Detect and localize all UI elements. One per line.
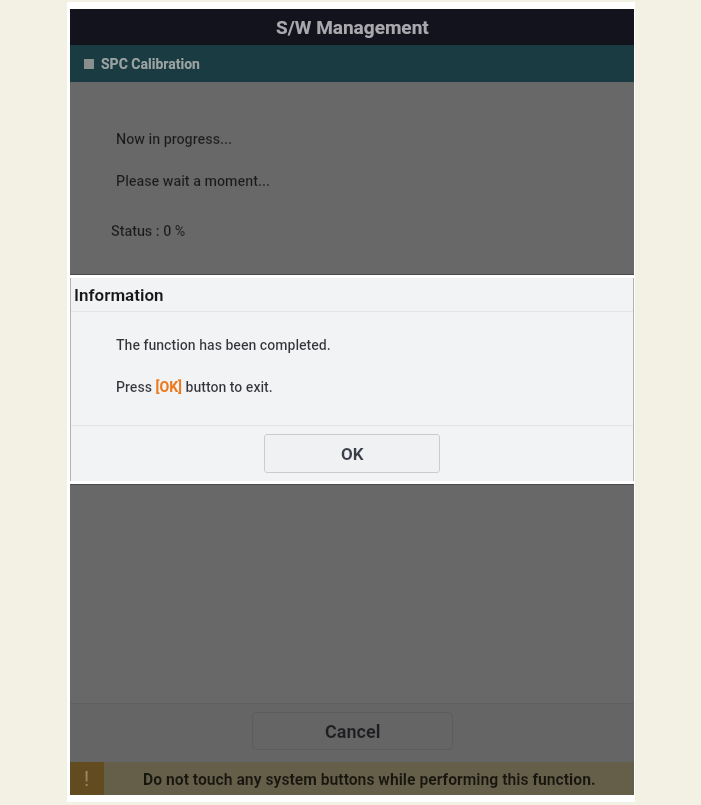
staticText: OK [341,444,364,464]
button[interactable]: OK [264,434,440,473]
staticText: S/W Management [276,16,429,38]
staticText: Status : 0 % [111,223,186,240]
staticText: Information [74,285,164,305]
staticText: Do not touch any system buttons while pe… [143,770,596,788]
other: Warning [70,762,104,795]
staticText: Please wait a moment... [116,173,270,190]
staticText: Cancel [325,721,381,742]
staticText: ! [84,767,90,790]
staticText: SPC Calibration [101,56,200,72]
button[interactable]: Cancel [252,712,453,750]
staticText: Press [OK] button to exit. [116,379,273,396]
staticText: The function has been completed. [116,337,331,354]
staticText: Now in progress... [116,131,233,148]
